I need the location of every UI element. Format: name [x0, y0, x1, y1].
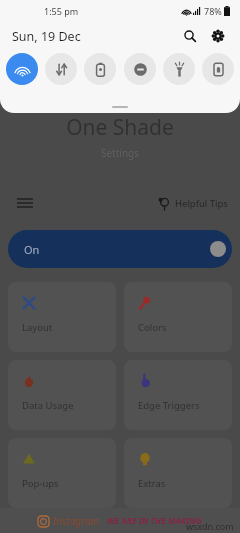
staticText: Layout — [22, 321, 53, 334]
button[interactable]: On — [8, 230, 232, 268]
button[interactable]: Menu — [12, 190, 38, 216]
button[interactable]: Wi-Fi — [6, 53, 38, 85]
button[interactable]: Battery saver — [84, 53, 116, 85]
button[interactable]: Flashlight — [163, 53, 195, 85]
button[interactable]: Instagram — [0, 508, 240, 533]
staticText: Helpful Tips — [175, 197, 228, 210]
staticText: Instagram — [53, 514, 100, 528]
staticText: Colors — [138, 321, 167, 334]
staticText: Edge Triggers — [138, 399, 200, 412]
button[interactable]: Mobile data — [45, 53, 77, 85]
button[interactable]: Do not disturb — [124, 53, 156, 85]
button[interactable]: Settings — [208, 26, 228, 46]
button[interactable]: Layout — [8, 282, 116, 352]
staticText: One Shade — [0, 113, 240, 142]
button[interactable]: Search — [180, 26, 200, 46]
staticText: Data Usage — [22, 399, 74, 412]
staticText: 78% — [204, 5, 222, 17]
staticText: On — [24, 242, 40, 257]
button[interactable]: Extras — [124, 438, 232, 508]
staticText: Pop-ups — [22, 477, 59, 490]
button[interactable]: Lock screen — [202, 53, 234, 85]
staticText: 1:55 pm — [44, 5, 79, 17]
button[interactable]: Colors — [124, 282, 232, 352]
staticText: WE ARE IN THE MAKING — [107, 515, 202, 527]
staticText: Extras — [138, 477, 166, 490]
staticText: wsxdn.com — [186, 520, 234, 532]
button[interactable]: Edge Triggers — [124, 360, 232, 430]
button[interactable]: Pop-ups — [8, 438, 116, 508]
button[interactable]: Helpful Tips — [158, 197, 228, 210]
staticText: Sun, 19 Dec — [12, 28, 81, 45]
button[interactable]: Data Usage — [8, 360, 116, 430]
